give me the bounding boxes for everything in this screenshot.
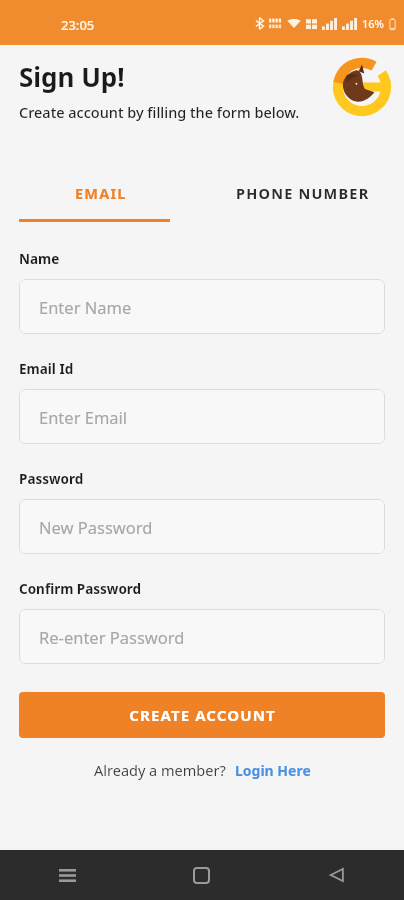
- button[interactable]: EMAIL: [0, 170, 202, 216]
- staticText: Enter Email: [39, 406, 128, 428]
- staticText: Email Id: [19, 360, 74, 378]
- staticText: Create account by filling the form below…: [19, 102, 300, 122]
- staticText: Confirm Password: [19, 580, 142, 598]
- button[interactable]: Recent apps: [0, 850, 134, 900]
- button[interactable]: Login Here: [235, 761, 311, 780]
- staticText: 16%: [362, 16, 384, 31]
- button[interactable]: Enter Name: [19, 279, 385, 334]
- staticText: Name: [19, 250, 60, 268]
- staticText: 23:05: [61, 16, 95, 34]
- button[interactable]: Back: [269, 850, 404, 900]
- staticText: CREATE ACCOUNT: [129, 705, 276, 725]
- staticText: Enter Name: [39, 296, 132, 318]
- button[interactable]: CREATE ACCOUNT: [19, 692, 385, 738]
- button[interactable]: Re-enter Password: [19, 609, 385, 664]
- staticText: Password: [19, 470, 84, 488]
- staticText: New Password: [39, 516, 153, 538]
- staticText: EMAIL: [75, 183, 127, 203]
- staticText: Sign Up!: [19, 59, 125, 94]
- staticText: Login Here: [235, 761, 311, 780]
- button[interactable]: PHONE NUMBER: [202, 170, 404, 216]
- staticText: Re-enter Password: [39, 626, 185, 648]
- staticText: PHONE NUMBER: [236, 183, 370, 203]
- button[interactable]: Home: [134, 850, 269, 900]
- button[interactable]: Enter Email: [19, 389, 385, 444]
- button[interactable]: New Password: [19, 499, 385, 554]
- staticText: Already a member?: [94, 760, 226, 780]
